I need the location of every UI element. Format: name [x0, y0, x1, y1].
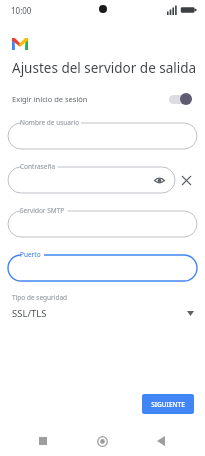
button[interactable]: Borrar — [175, 167, 197, 189]
button[interactable]: Exigir inicio de sesión — [0, 87, 205, 111]
button[interactable]: Contraseña — [8, 162, 175, 193]
staticText: SIGUIENTE — [151, 400, 185, 409]
staticText: SSL/TLS — [12, 307, 47, 320]
staticText: Tipo de seguridad — [12, 293, 68, 302]
staticText: Nombre de usuario — [20, 118, 80, 127]
staticText: Servidor SMTP — [20, 206, 65, 215]
button[interactable]: Tipo de seguridad — [0, 293, 205, 320]
button[interactable]: Inicio — [87, 426, 117, 456]
button[interactable]: Servidor SMTP — [8, 206, 197, 237]
button[interactable]: Mostrar contraseña — [151, 172, 167, 188]
button[interactable]: SIGUIENTE — [142, 394, 194, 414]
staticText: Exigir inicio de sesión — [12, 94, 88, 104]
staticText: Ajustes del servidor de salida — [12, 59, 197, 77]
staticText: Puerto — [20, 250, 41, 259]
button[interactable]: Puerto — [8, 250, 197, 281]
button[interactable]: Atrás — [146, 426, 176, 456]
staticText: 10:00 — [11, 5, 32, 16]
staticText: Contraseña — [20, 162, 56, 171]
button[interactable]: Recientes — [28, 426, 58, 456]
button[interactable]: Nombre de usuario — [8, 118, 197, 149]
